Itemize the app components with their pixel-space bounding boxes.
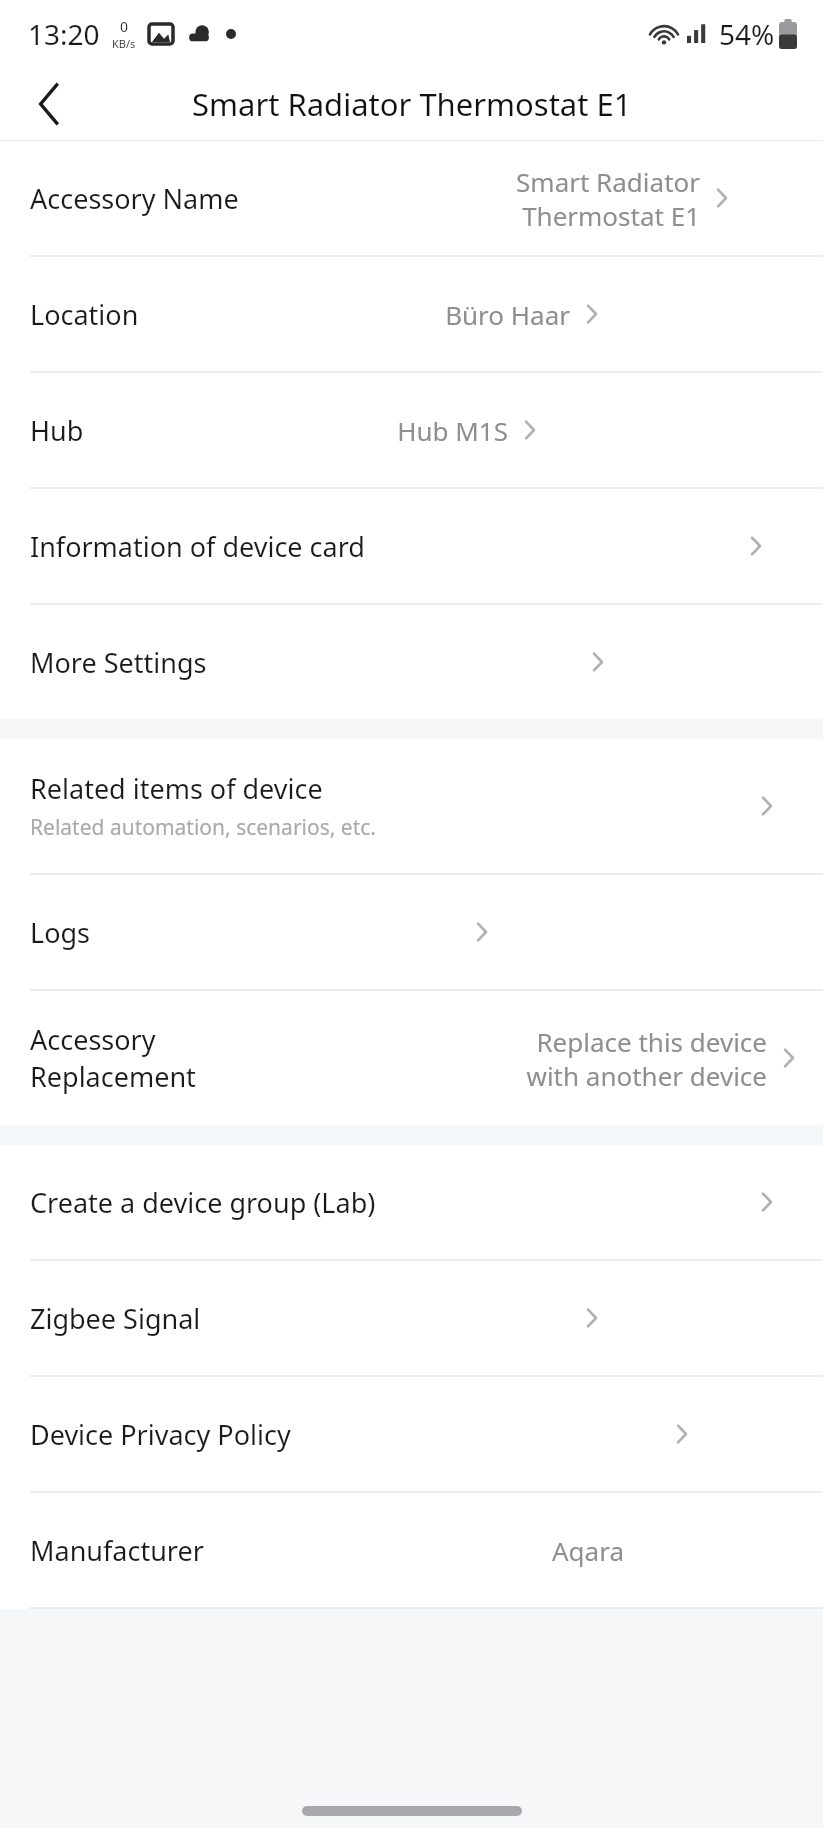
staticText: 0 — [120, 17, 129, 36]
staticText: Manufacturer — [30, 1532, 204, 1569]
button[interactable]: Back — [22, 77, 76, 131]
button[interactable]: Device Privacy Policy — [0, 1377, 823, 1491]
staticText: Smart Radiator Thermostat E1 — [516, 164, 700, 233]
button[interactable]: Create a device group (Lab) — [0, 1145, 823, 1259]
button[interactable]: Information of device card — [0, 489, 823, 603]
button[interactable]: Accessory Name — [0, 141, 823, 255]
staticText: Accessory Name — [30, 180, 239, 217]
button[interactable]: Manufacturer — [0, 1493, 823, 1607]
staticText: Smart Radiator Thermostat E1 — [192, 83, 632, 125]
staticText: 54% — [719, 15, 775, 53]
staticText: 13:20 — [28, 15, 100, 53]
button[interactable]: Hub — [0, 373, 823, 487]
staticText: Related items of device — [30, 770, 323, 807]
staticText: Related automation, scenarios, etc. — [30, 813, 376, 842]
staticText: Information of device card — [30, 528, 365, 565]
button[interactable]: Accessory Replacement — [0, 991, 823, 1125]
staticText: Create a device group (Lab) — [30, 1184, 376, 1221]
staticText: Aqara — [552, 1533, 624, 1568]
button[interactable]: Related items of device — [0, 739, 823, 873]
staticText: Accessory Replacement — [30, 1021, 278, 1095]
staticText: KB/s — [112, 36, 136, 51]
staticText: More Settings — [30, 644, 207, 681]
button[interactable]: Logs — [0, 875, 823, 989]
staticText: Device Privacy Policy — [30, 1416, 291, 1453]
staticText: Location — [30, 296, 139, 333]
staticText: Hub M1S — [397, 413, 508, 448]
staticText: Logs — [30, 914, 91, 951]
staticText: Replace this device with another device — [526, 1024, 767, 1093]
staticText: Büro Haar — [445, 297, 570, 332]
button[interactable]: More Settings — [0, 605, 823, 719]
button[interactable]: Zigbee Signal — [0, 1261, 823, 1375]
staticText: Hub — [30, 412, 84, 449]
staticText: Zigbee Signal — [30, 1300, 201, 1337]
button[interactable]: Location — [0, 257, 823, 371]
